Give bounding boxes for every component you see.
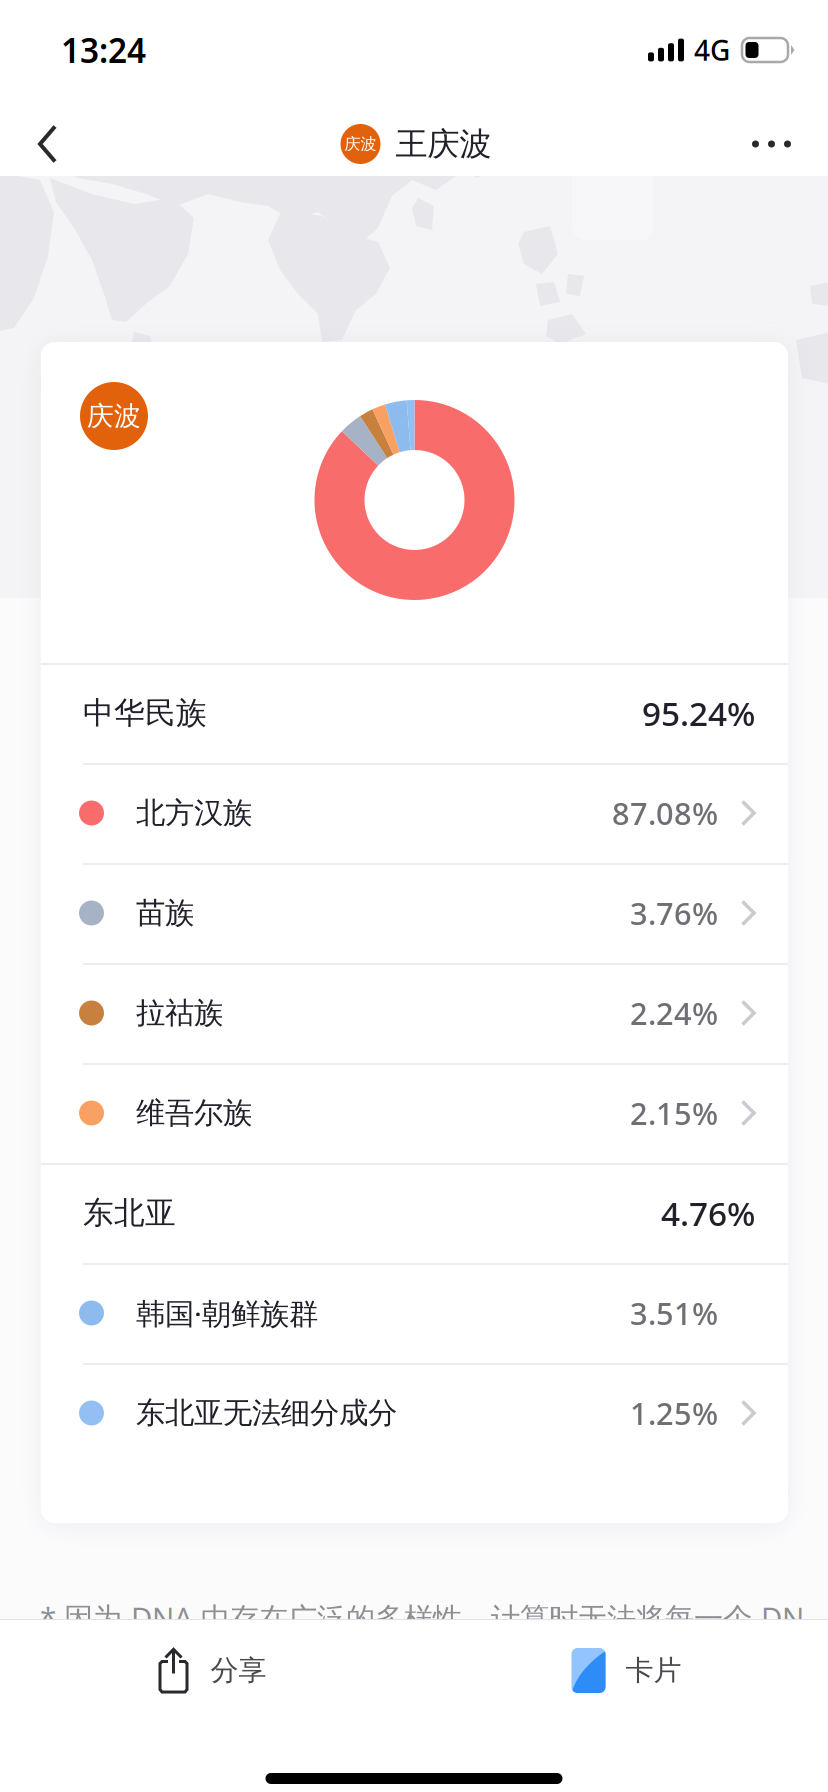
staticText: 庆波: [87, 400, 141, 432]
staticText: 东北亚无法细分成分: [136, 1395, 397, 1431]
staticText: 庆波: [344, 134, 376, 154]
button[interactable]: 分享: [0, 1620, 414, 1721]
staticText: 4G: [694, 31, 730, 69]
button[interactable]: 拉祜族: [41, 963, 788, 1063]
button[interactable]: More: [718, 112, 828, 175]
button[interactable]: 苗族: [41, 863, 788, 963]
staticText: 95.24%: [642, 691, 755, 735]
staticText: 王庆波: [395, 124, 491, 164]
staticText: 韩国·朝鲜族群: [136, 1293, 318, 1332]
staticText: 中华民族: [83, 694, 207, 732]
button[interactable]: 东北亚: [41, 1163, 788, 1263]
staticText: 87.08%: [612, 793, 718, 833]
staticText: 拉祜族: [136, 995, 223, 1031]
button[interactable]: 北方汉族: [41, 763, 788, 863]
staticText: 东北亚: [83, 1194, 176, 1232]
staticText: 分享: [210, 1653, 266, 1688]
staticText: 北方汉族: [136, 795, 252, 831]
staticText: 13:24: [61, 28, 146, 72]
staticText: 卡片: [625, 1653, 681, 1688]
button[interactable]: Back: [0, 106, 91, 181]
staticText: 2.24%: [630, 993, 718, 1033]
staticText: 1.25%: [630, 1393, 718, 1433]
button[interactable]: 卡片: [414, 1620, 828, 1721]
button[interactable]: 维吾尔族: [41, 1063, 788, 1163]
staticText: 3.51%: [630, 1293, 718, 1333]
staticText: 苗族: [136, 895, 194, 931]
button[interactable]: 韩国·朝鲜族群: [41, 1263, 788, 1363]
button[interactable]: 东北亚无法细分成分: [41, 1363, 788, 1463]
staticText: 4.76%: [661, 1191, 755, 1235]
staticText: * 因为 DNA 中存在广泛的多样性，计算时无法将每一个 DNA 区: [40, 1598, 828, 1637]
staticText: 3.76%: [630, 893, 718, 933]
staticText: 2.15%: [630, 1093, 718, 1133]
button[interactable]: 中华民族: [41, 663, 788, 763]
staticText: 维吾尔族: [136, 1095, 252, 1131]
